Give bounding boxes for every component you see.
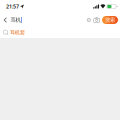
button[interactable]: 搜索 — [102, 16, 118, 24]
button[interactable]: 耳机套 — [0, 27, 120, 38]
staticText: 耳机套 — [10, 29, 25, 36]
button[interactable]: Back — [0, 14, 10, 26]
button[interactable]: Clear text — [85, 14, 93, 25]
staticText: 21:57 — [6, 3, 19, 10]
staticText: 耳机 — [10, 17, 20, 23]
button[interactable]: Search by image — [93, 14, 101, 25]
staticText: 搜索 — [105, 17, 115, 23]
